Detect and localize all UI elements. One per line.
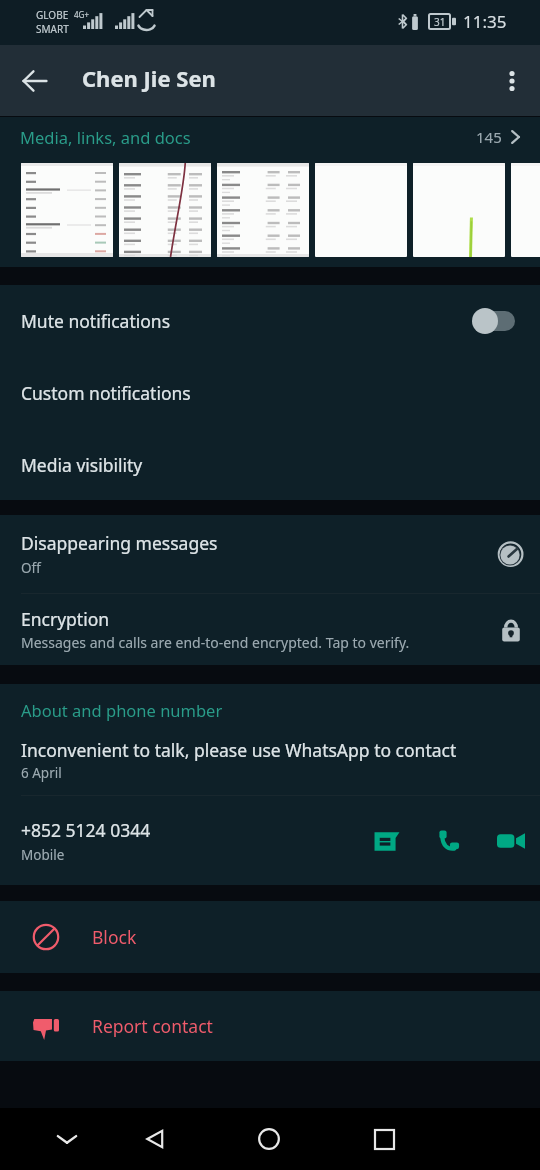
button[interactable]: Custom notifications: [0, 357, 540, 429]
button[interactable]: Message: [363, 817, 411, 865]
staticText: GLOBE: [36, 8, 69, 22]
button[interactable]: More options: [484, 53, 540, 109]
staticText: Custom notifications: [21, 381, 191, 405]
button[interactable]: Back: [132, 1108, 178, 1170]
staticText: Mute notifications: [21, 309, 171, 333]
button[interactable]: Report contact: [0, 991, 540, 1061]
button[interactable]: Media, links, and docs: [0, 117, 540, 157]
staticText: Disappearing messages: [21, 531, 218, 555]
button[interactable]: Hide keyboard: [44, 1108, 90, 1170]
staticText: Encryption: [21, 607, 110, 631]
staticText: Report contact: [92, 1014, 213, 1038]
button[interactable]: [21, 163, 113, 257]
button[interactable]: Encryption: [0, 594, 540, 665]
button[interactable]: Video call: [487, 817, 535, 865]
button[interactable]: Mute notifications toggle: [470, 301, 526, 341]
staticText: 31: [434, 15, 446, 29]
button[interactable]: [413, 163, 505, 257]
button[interactable]: Recent apps: [361, 1108, 407, 1170]
staticText: 11:35: [463, 10, 507, 33]
staticText: 145: [476, 127, 502, 147]
staticText: Off: [21, 559, 41, 577]
button[interactable]: Mute notifications: [0, 285, 540, 357]
staticText: Block: [92, 925, 137, 949]
staticText: Media visibility: [21, 453, 143, 477]
staticText: Chen Jie Sen: [82, 63, 216, 93]
staticText: About and phone number: [21, 699, 223, 721]
button[interactable]: Call: [425, 817, 473, 865]
button[interactable]: Home: [246, 1108, 292, 1170]
button[interactable]: Back: [7, 53, 63, 109]
staticText: Mobile: [21, 846, 65, 864]
button[interactable]: Inconvenient to talk, please use WhatsAp…: [0, 738, 540, 782]
staticText: Media, links, and docs: [20, 126, 191, 148]
button[interactable]: Media visibility: [0, 429, 540, 500]
button[interactable]: [217, 163, 309, 257]
staticText: Inconvenient to talk, please use WhatsAp…: [21, 738, 457, 762]
staticText: +852 5124 0344: [21, 818, 151, 842]
button[interactable]: Disappearing messages: [0, 515, 540, 593]
staticText: Messages and calls are end-to-end encryp…: [21, 633, 410, 652]
staticText: 6 April: [21, 764, 62, 782]
staticText: 4G+: [74, 9, 89, 20]
button[interactable]: [119, 163, 211, 257]
button[interactable]: Block: [0, 901, 540, 973]
staticText: SMART: [36, 22, 69, 36]
